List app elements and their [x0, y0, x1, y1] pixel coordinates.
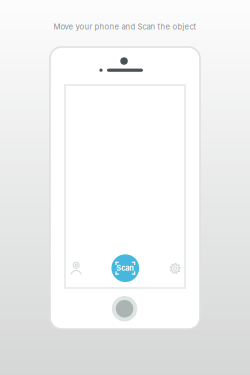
staticText: Move your phone and Scan the object: [53, 22, 196, 31]
staticText: Scan: [116, 264, 134, 273]
button[interactable]: Scan: [111, 254, 139, 282]
